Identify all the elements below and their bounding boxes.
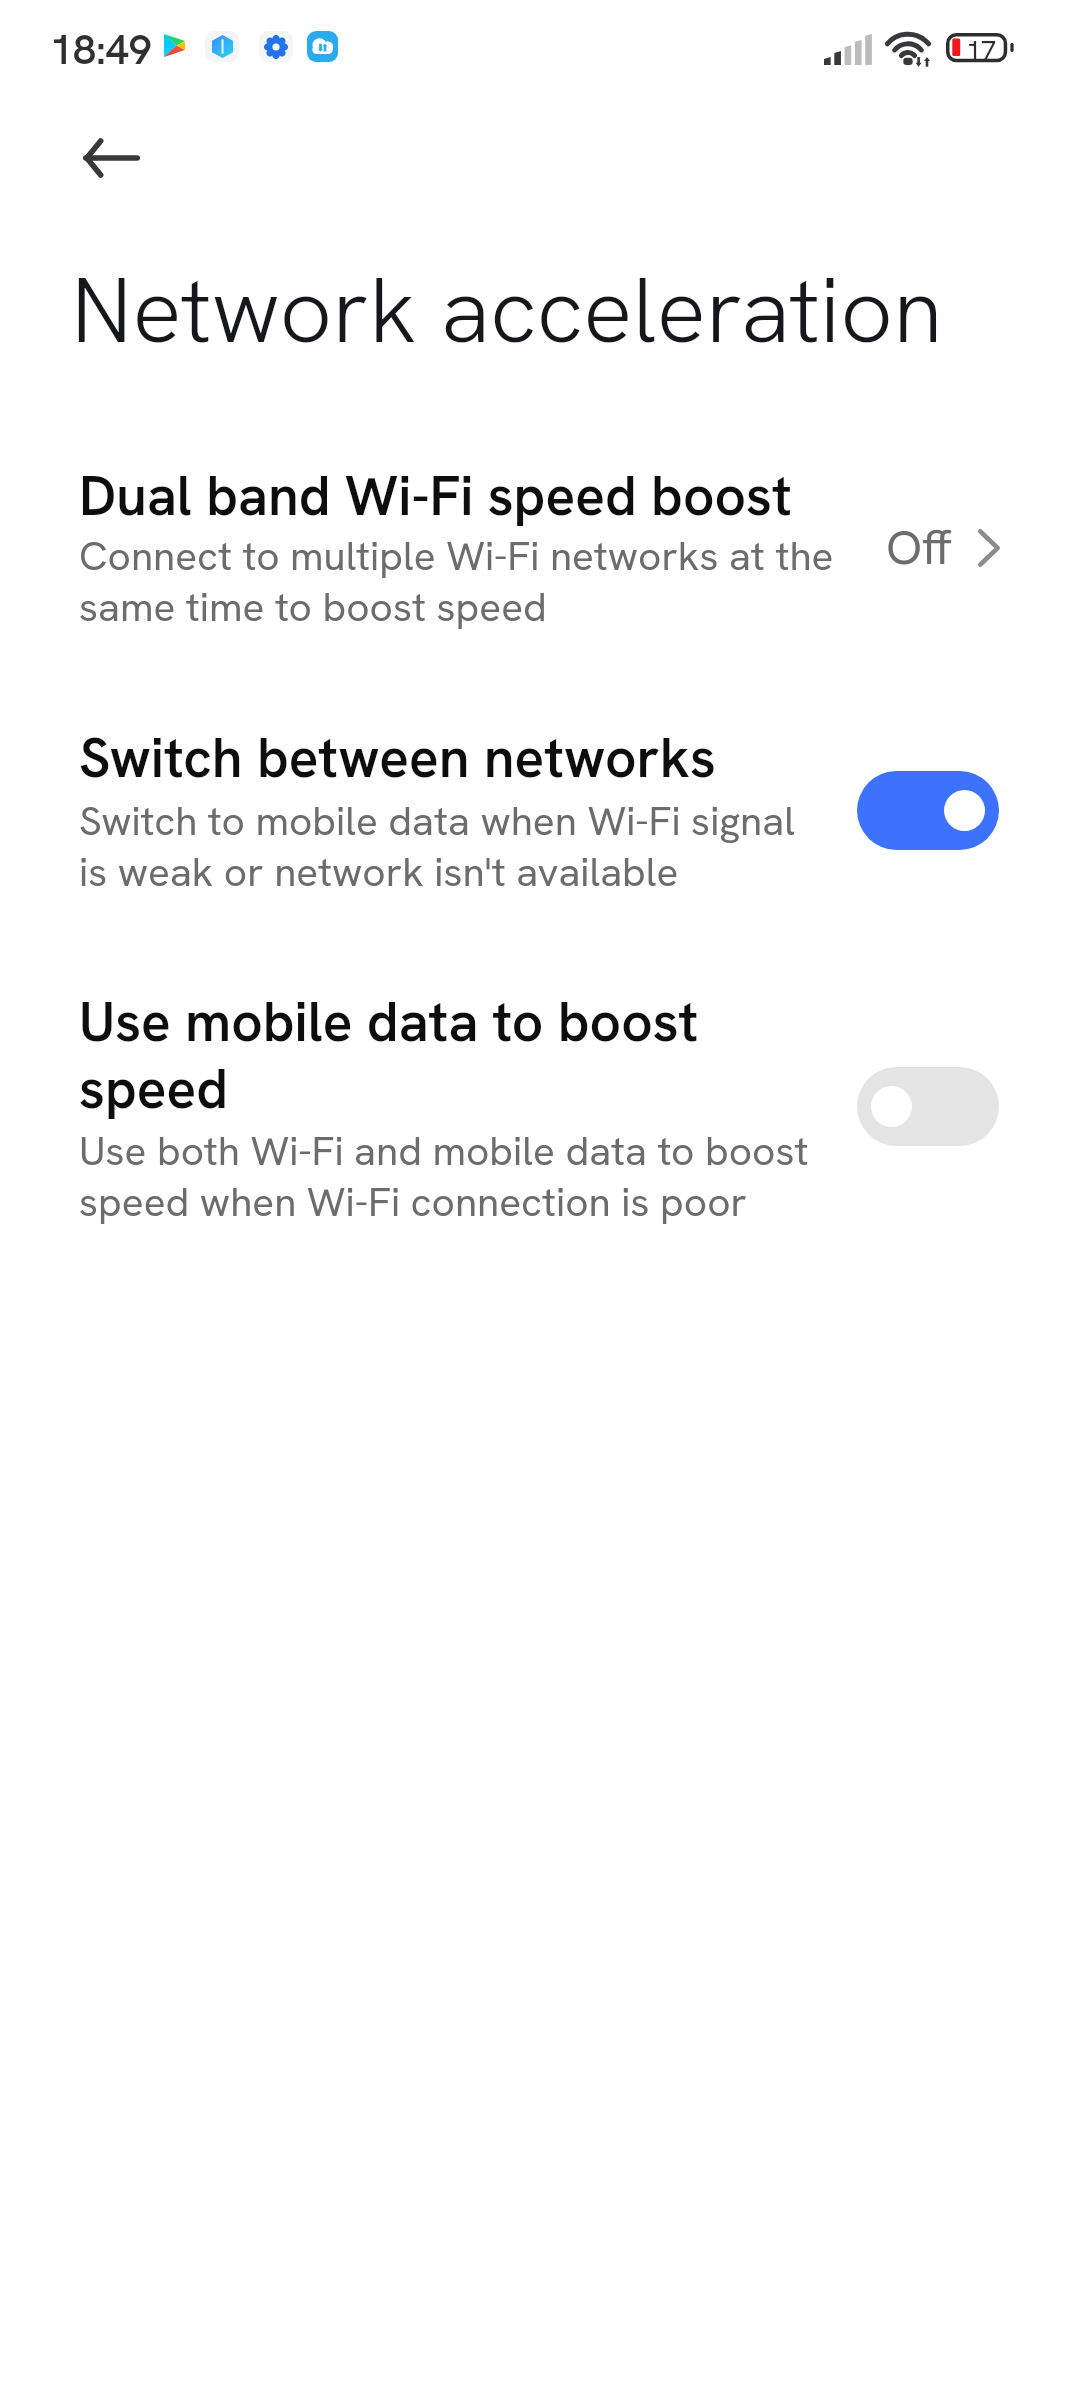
staticText: 17 (966, 33, 997, 64)
staticText: Off (886, 519, 952, 577)
button[interactable]: Dual band Wi-Fi speed boost, Off (886, 519, 1000, 577)
button[interactable]: Use mobile data to boost speed (0, 990, 1080, 1246)
staticText: 18:49 (50, 27, 152, 75)
button[interactable]: Dual band Wi-Fi speed boost (0, 464, 1080, 651)
staticText: Switch between networks (79, 726, 879, 793)
staticText: Network acceleration (71, 258, 943, 368)
staticText: Use mobile data to boost speed (79, 990, 879, 1124)
button[interactable]: Back (63, 109, 160, 206)
staticText: Dual band Wi-Fi speed boost (79, 464, 879, 531)
button[interactable]: Switch off (857, 1067, 999, 1146)
button[interactable]: Switch on (857, 771, 999, 850)
staticText: Switch to mobile data when Wi-Fi signal … (79, 796, 879, 898)
button[interactable]: Switch between networks (0, 726, 1080, 916)
staticText: Connect to multiple Wi-Fi networks at th… (79, 531, 879, 633)
staticText: Use both Wi-Fi and mobile data to boost … (79, 1126, 879, 1228)
